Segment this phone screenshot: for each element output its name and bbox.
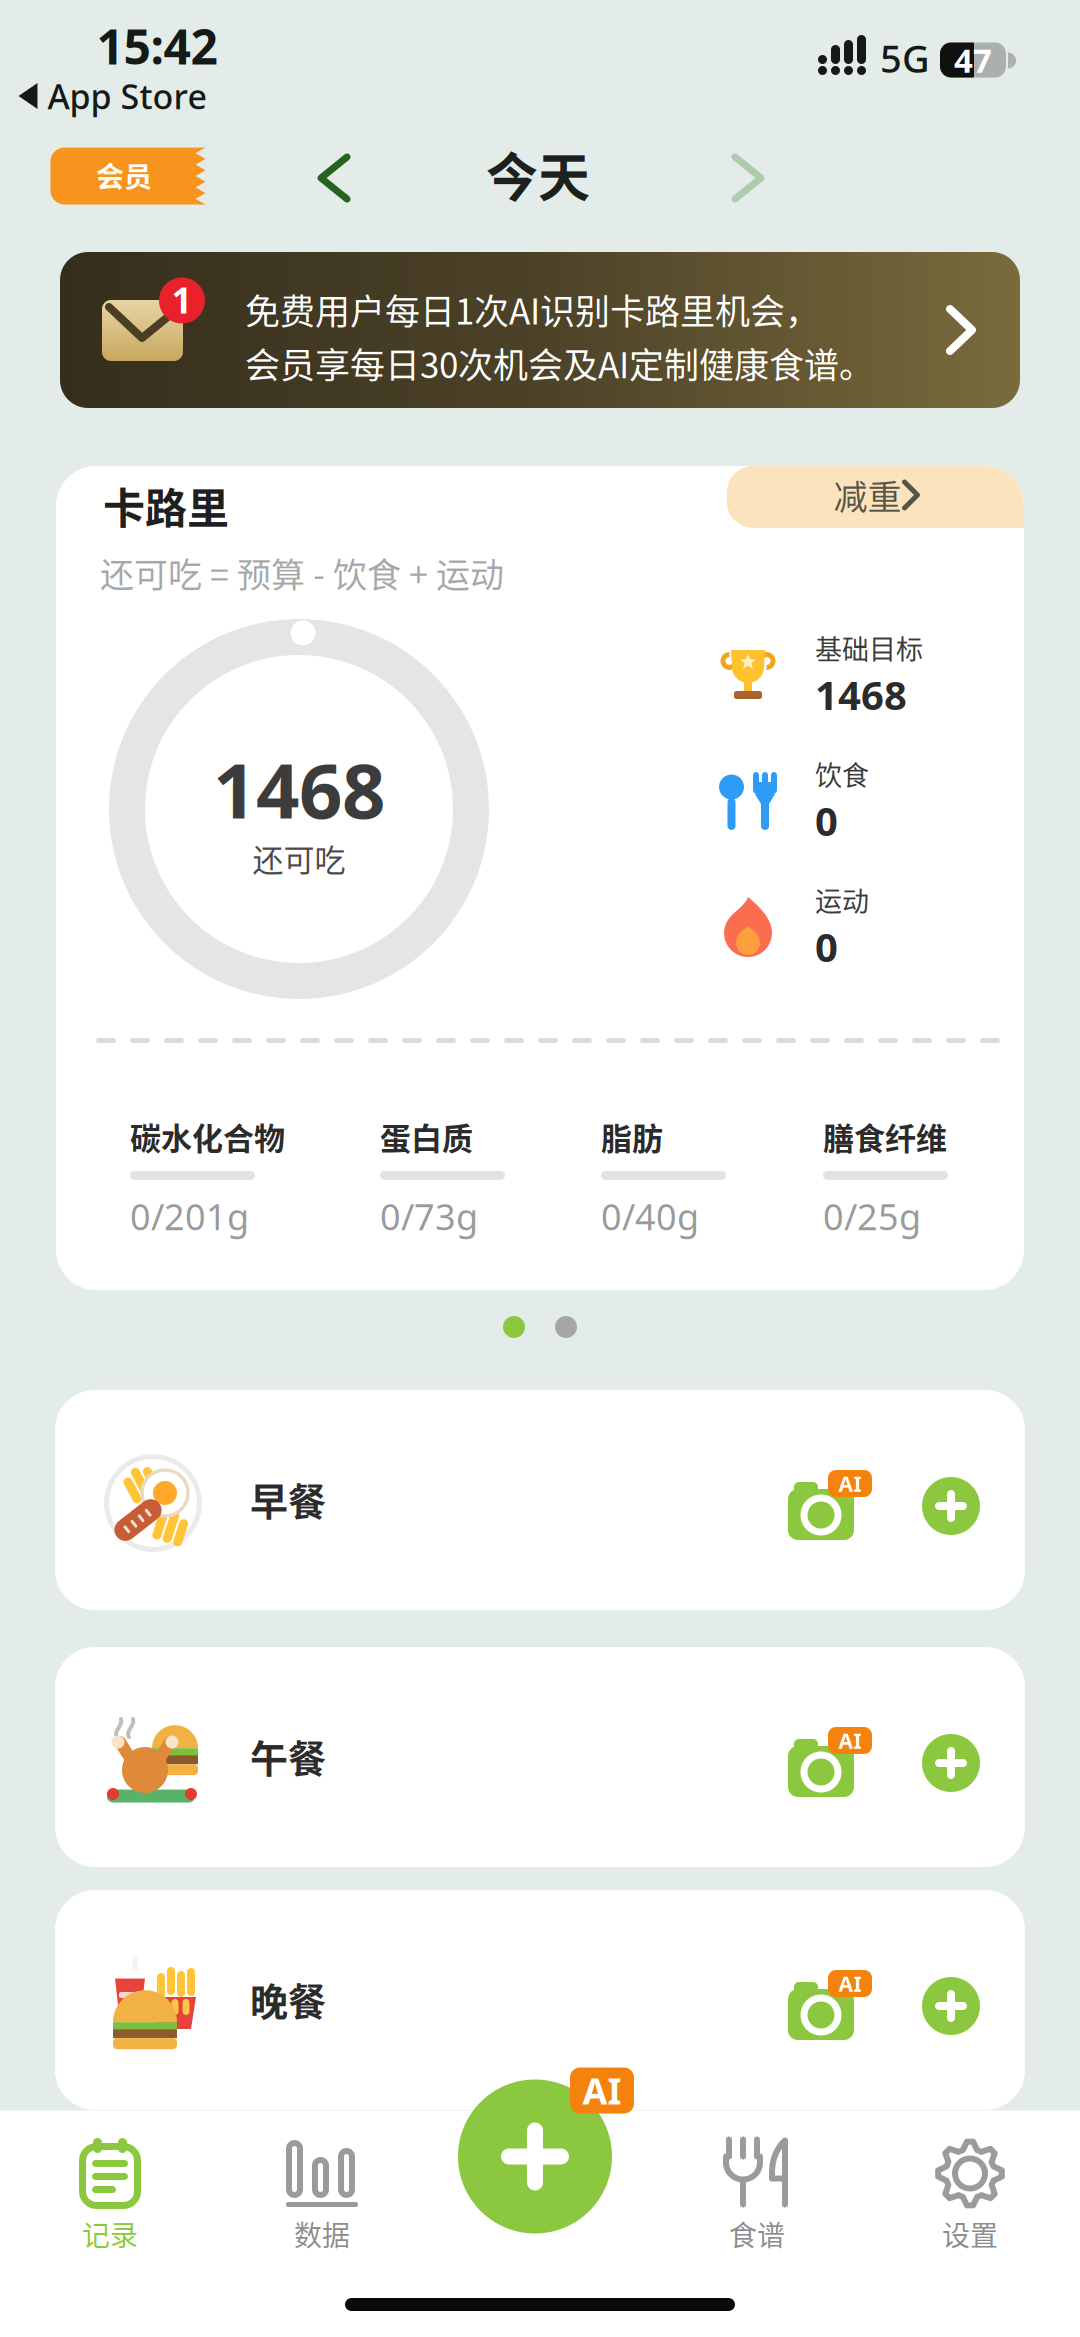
- staticText: 蛋白质: [380, 1114, 473, 1159]
- staticText: AI: [838, 1726, 861, 1755]
- staticText: 0/25g: [823, 1192, 921, 1241]
- staticText: 1: [171, 275, 192, 324]
- staticText: App Store: [47, 73, 207, 119]
- staticText: 15:42: [96, 13, 217, 79]
- staticText: AI: [582, 2066, 621, 2115]
- staticText: 0/201g: [130, 1192, 249, 1241]
- staticText: 卡路里: [103, 475, 229, 536]
- button[interactable]: AI拍照识别: [788, 1713, 872, 1797]
- staticText: 免费用户每日1次AI识别卡路里机会，: [245, 284, 820, 335]
- button[interactable]: 会员: [50, 147, 205, 204]
- staticText: 47: [954, 37, 992, 82]
- staticText: AI: [838, 1469, 861, 1498]
- staticText: AI: [838, 1969, 861, 1998]
- staticText: 碳水化合物: [130, 1114, 285, 1159]
- button[interactable]: 1: [60, 252, 1020, 408]
- staticText: 早餐: [250, 1471, 326, 1526]
- button[interactable]: AI拍照识别: [788, 1956, 872, 2040]
- staticText: 设置: [942, 2213, 998, 2254]
- button[interactable]: AI记录: [458, 2079, 638, 2233]
- button[interactable]: 添加: [922, 1977, 980, 2035]
- staticText: 晚餐: [250, 1971, 326, 2026]
- staticText: 膳食纤维: [823, 1114, 947, 1159]
- staticText: 0: [815, 793, 838, 848]
- staticText: 会员享每日30次机会及AI定制健康食谱。: [245, 338, 874, 388]
- staticText: 记录: [82, 2213, 138, 2254]
- staticText: 还可吃: [252, 836, 345, 880]
- staticText: 运动: [815, 880, 869, 919]
- staticText: 1468: [815, 667, 907, 722]
- staticText: 基础目标: [815, 628, 923, 667]
- staticText: 食谱: [729, 2213, 785, 2254]
- staticText: 数据: [294, 2213, 350, 2254]
- button[interactable]: AI拍照识别: [788, 1456, 872, 1540]
- staticText: 脂肪: [601, 1114, 663, 1159]
- button[interactable]: 设置: [880, 2137, 1060, 2279]
- button[interactable]: 记录: [20, 2137, 200, 2279]
- button[interactable]: 添加: [922, 1477, 980, 1535]
- button[interactable]: 前一天: [302, 146, 366, 210]
- staticText: 还可吃 = 预算 - 饮食 + 运动: [100, 548, 504, 597]
- staticText: 0/73g: [380, 1192, 478, 1241]
- staticText: 0/40g: [601, 1192, 699, 1241]
- button[interactable]: 食谱: [667, 2137, 847, 2279]
- staticText: 减重: [833, 470, 901, 520]
- button[interactable]: 数据: [232, 2137, 412, 2279]
- button[interactable]: 减重: [727, 466, 1024, 528]
- staticText: 0: [815, 919, 838, 974]
- staticText: 1468: [213, 737, 385, 841]
- button[interactable]: 添加: [922, 1734, 980, 1792]
- staticText: 会员: [96, 155, 152, 195]
- staticText: 5G: [880, 32, 930, 84]
- staticText: 饮食: [815, 754, 869, 793]
- staticText: 午餐: [250, 1728, 326, 1783]
- staticText: 今天: [486, 136, 590, 212]
- button[interactable]: 后一天: [716, 146, 780, 210]
